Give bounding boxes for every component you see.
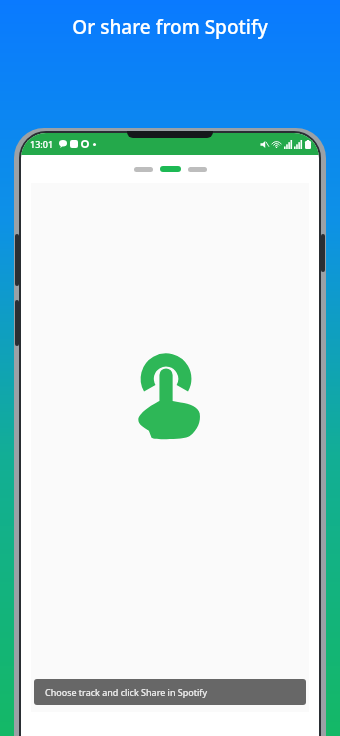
button[interactable]: Choose track and click Share in Spotify <box>34 679 306 705</box>
staticText: 13:01 <box>30 138 54 150</box>
staticText: Choose track and click Share in Spotify <box>45 686 207 698</box>
button[interactable] <box>188 167 207 172</box>
button[interactable]: Tap to choose track <box>137 362 203 440</box>
button[interactable] <box>160 166 181 172</box>
button[interactable] <box>134 167 153 172</box>
staticText: Or share from Spotify <box>72 14 268 40</box>
